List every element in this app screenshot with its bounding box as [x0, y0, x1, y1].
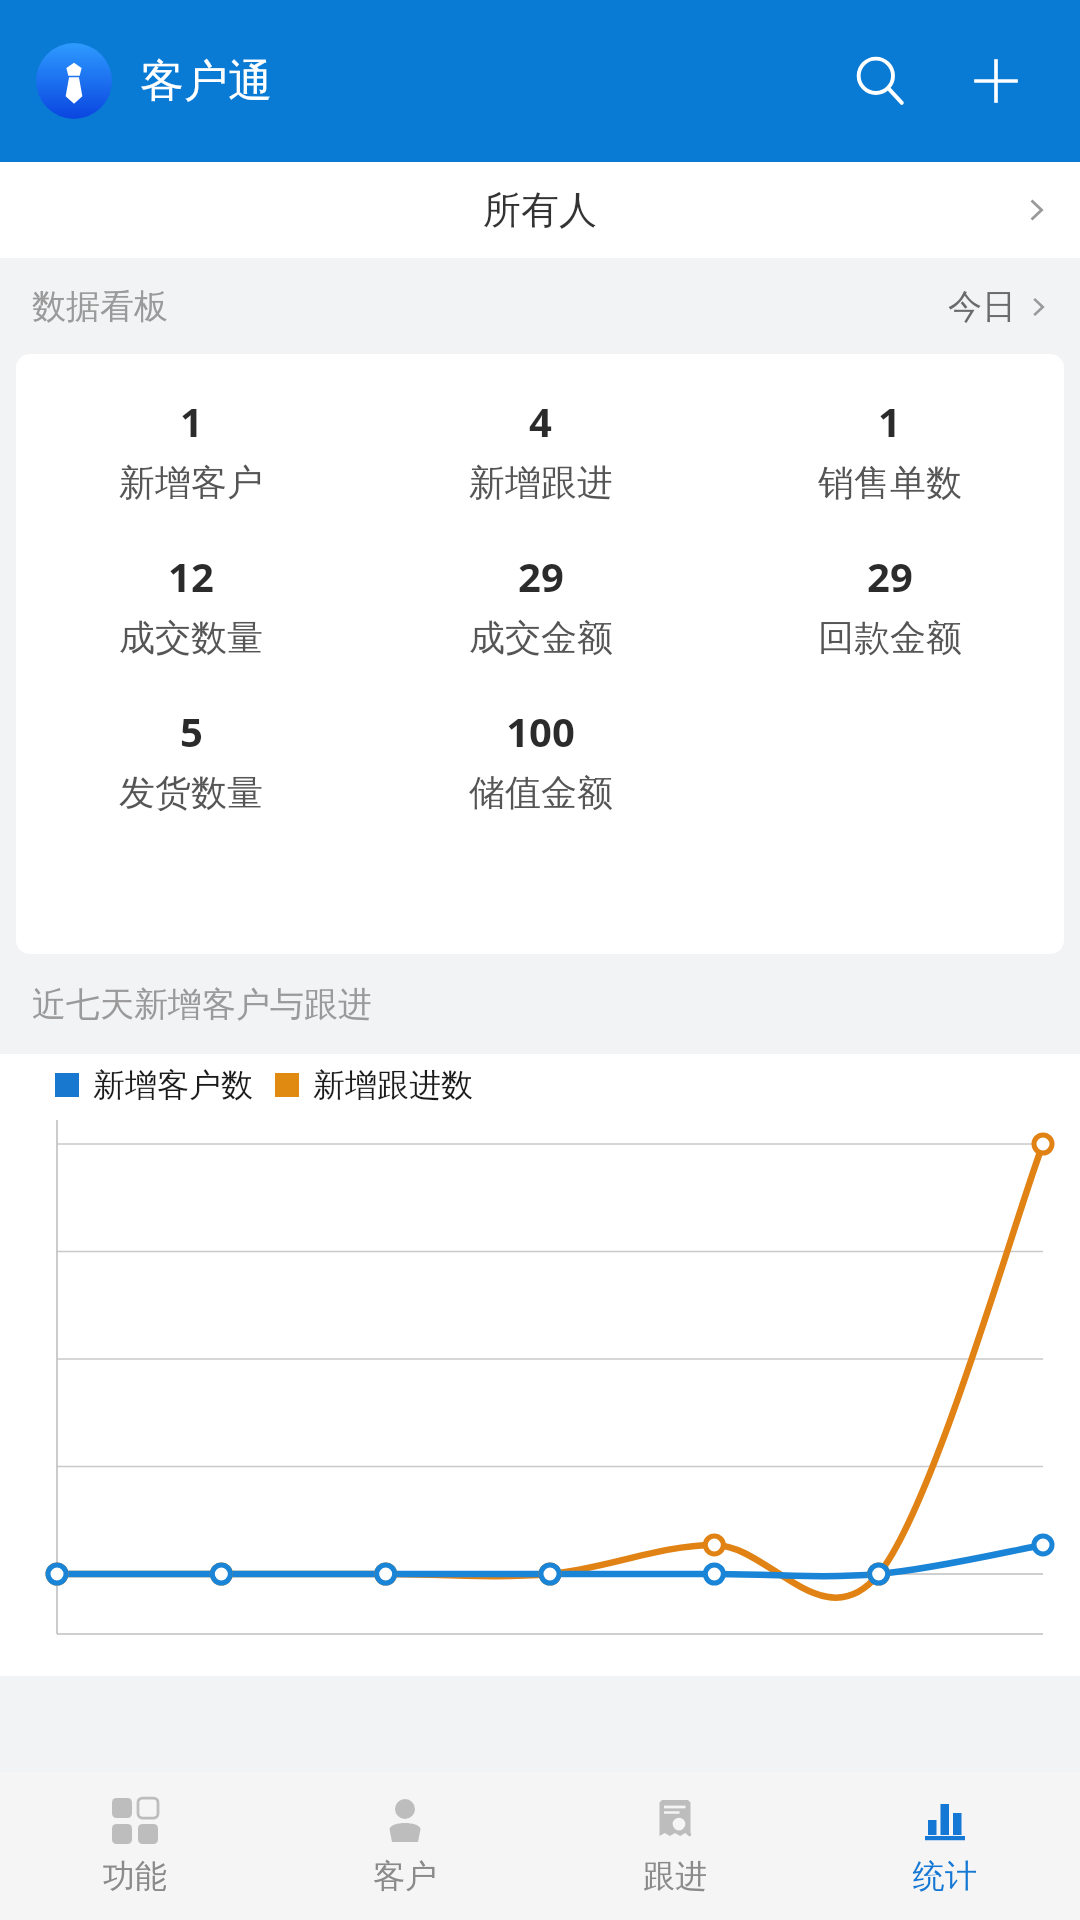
button[interactable]: Add — [948, 33, 1044, 129]
button[interactable]: 1 — [715, 394, 1064, 505]
staticText: 成交金额 — [469, 615, 613, 660]
button[interactable]: 29 — [366, 549, 715, 660]
button[interactable]: 1 — [16, 394, 366, 505]
staticText: 新增跟进 — [469, 460, 613, 505]
staticText: 4 — [529, 394, 552, 448]
staticText: 数据看板 — [32, 285, 168, 328]
staticText: 回款金额 — [818, 615, 962, 660]
staticText: 新增客户数 — [93, 1065, 253, 1105]
button[interactable]: 4 — [366, 394, 715, 505]
staticText: 新增跟进数 — [313, 1065, 473, 1105]
staticText: 5 — [180, 704, 203, 758]
staticText: 储值金额 — [469, 770, 613, 815]
staticText: 成交数量 — [119, 615, 263, 660]
button[interactable]: 功能 — [0, 1772, 270, 1920]
button[interactable]: 12 — [16, 549, 366, 660]
staticText: 新增客户 — [119, 460, 263, 505]
staticText: 跟进 — [643, 1856, 707, 1896]
button[interactable]: 5 — [16, 704, 366, 815]
button[interactable]: 所有人 — [0, 162, 1080, 258]
staticText: 所有人 — [483, 186, 597, 234]
staticText: 功能 — [103, 1856, 167, 1896]
staticText: 近七天新增客户与跟进 — [32, 983, 372, 1026]
button[interactable]: 今日 — [948, 285, 1050, 328]
button[interactable]: 29 — [715, 549, 1064, 660]
staticText: 12 — [168, 549, 214, 603]
staticText: 29 — [867, 549, 913, 603]
button[interactable]: 100 — [366, 704, 715, 815]
button[interactable]: 跟进 — [540, 1772, 810, 1920]
staticText: 今日 — [948, 285, 1016, 328]
staticText: 客户 — [373, 1856, 437, 1896]
staticText: 1 — [878, 394, 901, 448]
button[interactable]: Search — [832, 33, 928, 129]
staticText: 统计 — [913, 1856, 977, 1896]
staticText: 29 — [518, 549, 564, 603]
button[interactable]: 客户 — [270, 1772, 540, 1920]
staticText: 发货数量 — [119, 770, 263, 815]
staticText: 销售单数 — [818, 460, 962, 505]
staticText: 客户通 — [140, 54, 272, 109]
staticText: 100 — [506, 704, 575, 758]
button[interactable]: 统计 — [810, 1772, 1080, 1920]
staticText: 1 — [180, 394, 203, 448]
